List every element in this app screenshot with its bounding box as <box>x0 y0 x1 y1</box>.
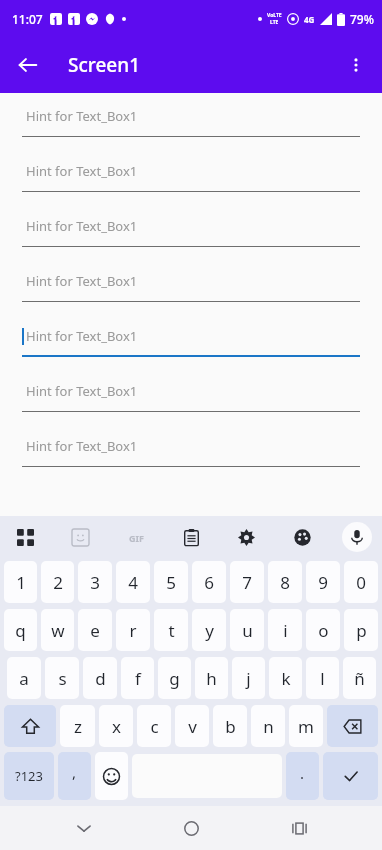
button[interactable]: Recent apps <box>275 806 323 850</box>
staticText: j <box>246 667 251 690</box>
button[interactable]: Hint for Text_Box1 <box>22 159 360 192</box>
button[interactable]: Hint for Text_Box1 <box>22 324 360 357</box>
button[interactable]: 1 <box>4 561 37 603</box>
button[interactable]: ñ <box>343 657 376 699</box>
button[interactable]: Back <box>60 806 108 850</box>
staticText: y <box>205 619 214 642</box>
staticText: ?123 <box>15 767 43 785</box>
button[interactable]: Backspace <box>327 705 378 747</box>
staticText: e <box>90 619 100 642</box>
button[interactable]: b <box>213 705 247 747</box>
staticText: h <box>206 667 217 690</box>
button[interactable]: Hint for Text_Box1 <box>22 214 360 247</box>
staticText: k <box>281 667 291 690</box>
button[interactable]: , <box>58 752 91 800</box>
button[interactable]: Clipboard <box>176 522 206 552</box>
button[interactable]: g <box>158 657 191 699</box>
button[interactable]: Themes <box>287 522 317 552</box>
button[interactable]: x <box>99 705 133 747</box>
staticText: Hint for Text_Box1 <box>26 382 138 400</box>
button[interactable]: ?123 <box>4 752 54 800</box>
button[interactable]: m <box>289 705 323 747</box>
staticText: a <box>19 667 29 690</box>
button[interactable]: 7 <box>230 561 264 603</box>
button[interactable]: f <box>121 657 154 699</box>
button[interactable]: j <box>232 657 265 699</box>
staticText: p <box>356 619 367 642</box>
button[interactable]: q <box>4 609 37 651</box>
button[interactable]: k <box>269 657 302 699</box>
staticText: c <box>150 715 159 738</box>
button[interactable]: i <box>268 609 302 651</box>
button[interactable]: n <box>251 705 285 747</box>
button[interactable]: 5 <box>154 561 188 603</box>
button[interactable]: Hint for Text_Box1 <box>22 269 360 302</box>
button[interactable]: o <box>306 609 340 651</box>
staticText: 9 <box>318 571 328 594</box>
staticText: l <box>320 667 325 690</box>
button[interactable]: 2 <box>41 561 74 603</box>
button[interactable]: . <box>286 752 319 800</box>
staticText: Hint for Text_Box1 <box>26 217 138 235</box>
button[interactable]: Enter <box>323 752 378 800</box>
button[interactable]: s <box>45 657 79 699</box>
button[interactable]: u <box>230 609 264 651</box>
button[interactable]: More options <box>336 45 376 85</box>
staticText: v <box>188 715 197 738</box>
button[interactable]: Hint for Text_Box1 <box>22 434 360 467</box>
staticText: r <box>129 619 137 642</box>
button[interactable]: t <box>154 609 188 651</box>
button[interactable]: Home <box>167 806 215 850</box>
button[interactable]: d <box>83 657 117 699</box>
button[interactable]: l <box>306 657 339 699</box>
button[interactable]: Hint for Text_Box1 <box>22 104 360 137</box>
staticText: . <box>300 763 305 783</box>
staticText: 7 <box>242 571 252 594</box>
staticText: x <box>112 715 121 738</box>
staticText: g <box>169 667 180 690</box>
button[interactable]: Settings <box>231 522 261 552</box>
button[interactable]: w <box>41 609 74 651</box>
button[interactable]: Voice input <box>342 522 372 552</box>
staticText: 11:07 <box>12 11 43 27</box>
button[interactable]: v <box>175 705 209 747</box>
button[interactable]: y <box>192 609 226 651</box>
button[interactable]: Stickers <box>65 522 95 552</box>
button[interactable]: 0 <box>344 561 378 603</box>
staticText: z <box>74 715 82 738</box>
button[interactable]: Shift <box>4 705 56 747</box>
button[interactable]: 3 <box>78 561 112 603</box>
button[interactable]: 9 <box>306 561 340 603</box>
staticText: 8 <box>280 571 290 594</box>
button[interactable]: 6 <box>192 561 226 603</box>
staticText: 3 <box>90 571 100 594</box>
button[interactable]: Hint for Text_Box1 <box>22 379 360 412</box>
staticText: n <box>263 715 274 738</box>
button[interactable]: 8 <box>268 561 302 603</box>
staticText: ñ <box>354 667 365 690</box>
button[interactable]: Emoji <box>95 752 128 800</box>
staticText: b <box>225 715 236 738</box>
staticText: 4 <box>128 571 138 594</box>
button[interactable]: z <box>60 705 95 747</box>
staticText: d <box>95 667 106 690</box>
button[interactable]: 4 <box>116 561 150 603</box>
staticText: o <box>318 619 329 642</box>
button[interactable]: a <box>7 657 41 699</box>
button[interactable]: p <box>344 609 378 651</box>
staticText: 4G <box>304 14 315 25</box>
button[interactable]: Back <box>10 47 46 83</box>
button[interactable]: h <box>195 657 228 699</box>
button[interactable]: e <box>78 609 112 651</box>
staticText: 5 <box>166 571 176 594</box>
button[interactable]: r <box>116 609 150 651</box>
staticText: u <box>242 619 253 642</box>
staticText: m <box>298 715 314 738</box>
button[interactable]: Apps <box>10 522 40 552</box>
staticText: GIF <box>129 532 144 544</box>
button[interactable]: GIF <box>121 522 151 552</box>
staticText: 6 <box>204 571 214 594</box>
button[interactable]: c <box>137 705 171 747</box>
staticText: q <box>15 619 26 642</box>
